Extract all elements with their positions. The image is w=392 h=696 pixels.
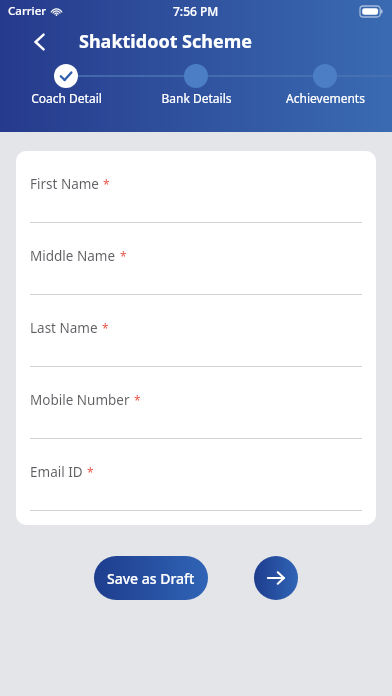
staticText: Achievements [286, 90, 365, 106]
staticText: Bank Details [161, 90, 232, 106]
staticText: * [102, 320, 109, 336]
staticText: Email ID [30, 463, 83, 481]
staticText: Mobile Number [30, 391, 130, 409]
staticText: * [134, 392, 141, 408]
button[interactable]: Last Name [16, 295, 376, 367]
staticText: * [120, 248, 127, 264]
staticText: Middle Name [30, 247, 116, 265]
button[interactable]: Back [22, 24, 58, 60]
staticText: Shaktidoot Scheme [79, 29, 253, 54]
button[interactable]: Coach Detail [11, 90, 121, 112]
button[interactable]: Middle Name [16, 223, 376, 295]
staticText: Save as Draft [107, 569, 195, 588]
staticText: Coach Detail [31, 90, 102, 106]
button[interactable]: Save as Draft [94, 556, 208, 600]
staticText: Last Name [30, 319, 98, 337]
button[interactable]: First Name [16, 151, 376, 223]
button[interactable]: Email ID [16, 439, 376, 511]
staticText: * [103, 176, 110, 192]
staticText: 7:56 PM [173, 3, 219, 19]
button[interactable]: Next [254, 556, 298, 600]
button[interactable]: Bank Details [141, 90, 251, 112]
button[interactable]: Achievements [270, 90, 380, 112]
staticText: * [87, 464, 94, 480]
button[interactable]: Mobile Number [16, 367, 376, 439]
staticText: Carrier [8, 3, 47, 19]
staticText: First Name [30, 175, 99, 193]
